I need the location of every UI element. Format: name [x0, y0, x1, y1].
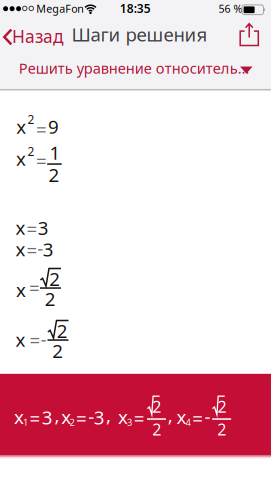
staticText: - [88, 404, 94, 429]
staticText: = [26, 237, 37, 262]
staticText: 56 % [219, 1, 243, 16]
staticText: x [16, 327, 26, 352]
staticText: = [36, 117, 47, 141]
staticText: = [36, 148, 47, 173]
staticText: = [192, 406, 203, 430]
staticText: x [61, 404, 71, 429]
staticText: 2 [45, 286, 56, 311]
staticText: = [26, 216, 37, 241]
staticText: 2 [27, 143, 34, 159]
button[interactable]: Share [234, 22, 264, 52]
staticText: x [118, 404, 128, 429]
staticText: 2 [217, 419, 226, 440]
staticText: 3 [127, 416, 132, 428]
staticText: = [29, 275, 40, 300]
staticText: x [16, 277, 26, 302]
staticText: 2 [69, 416, 74, 428]
staticText: 3 [94, 405, 105, 430]
staticText: 18:35 [120, 0, 151, 16]
staticText: 3 [43, 237, 54, 262]
staticText: 2 [152, 396, 161, 417]
staticText: , [168, 403, 173, 428]
staticText: 2 [27, 111, 34, 127]
staticText: Шаги решения [71, 22, 207, 47]
staticText: 3 [38, 215, 49, 240]
staticText: x [176, 404, 186, 429]
staticText: 2 [48, 162, 59, 187]
staticText: = [30, 406, 41, 430]
staticText: 1 [23, 416, 28, 428]
staticText: x [16, 236, 26, 261]
staticText: Решить уравнение относитель… [19, 58, 250, 78]
staticText: - [204, 404, 210, 429]
staticText: = [29, 327, 40, 352]
staticText: - [40, 326, 46, 351]
staticText: 3 [42, 405, 53, 430]
staticText: 2 [217, 396, 226, 417]
staticText: , [55, 403, 60, 428]
staticText: 2 [57, 318, 68, 343]
button[interactable]: Назад [0, 22, 72, 52]
staticText: x [16, 146, 26, 171]
button[interactable]: Решить уравнение относитель… [0, 54, 271, 89]
staticText: 2 [152, 419, 161, 440]
staticText: - [37, 235, 43, 260]
staticText: x [16, 215, 26, 240]
staticText: 2 [49, 266, 60, 291]
staticText: x [16, 114, 26, 139]
staticText: , [106, 403, 111, 428]
staticText: = [134, 406, 145, 430]
staticText: 9 [48, 114, 59, 139]
staticText: x [14, 404, 24, 429]
staticText: 2 [52, 338, 63, 363]
staticText: Назад [12, 25, 64, 48]
staticText: MegaFon [36, 1, 84, 16]
staticText: 1 [49, 140, 60, 165]
staticText: 4 [185, 416, 190, 428]
staticText: = [76, 406, 87, 430]
